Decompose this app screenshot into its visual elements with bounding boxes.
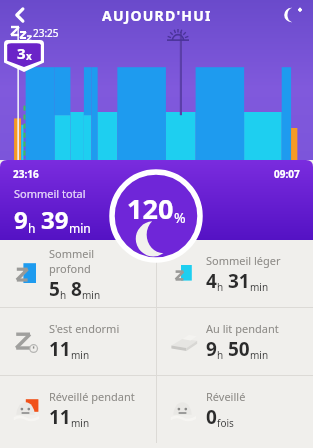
button[interactable]: Réveillé (157, 376, 313, 443)
staticText: fois (217, 416, 234, 430)
button[interactable]: Add sleep (273, 0, 313, 30)
staticText: 0 (206, 404, 217, 430)
staticText: Réveillé (206, 389, 246, 404)
staticText: h (217, 280, 224, 294)
staticText: min (82, 288, 101, 302)
staticText: 120 (127, 190, 174, 227)
staticText: 23:16 (13, 167, 39, 181)
staticText: 9 (14, 203, 28, 236)
staticText: h (28, 220, 36, 236)
button[interactable]: Au lit pendant (157, 308, 313, 375)
staticText: Sommeil léger (206, 253, 281, 268)
button[interactable]: Réveillé pendant (0, 376, 156, 443)
staticText: 8 (71, 276, 82, 302)
staticText: min (69, 220, 91, 236)
staticText: Au lit pendant (206, 321, 279, 336)
staticText: 09:07 (274, 167, 300, 181)
staticText: 31 (228, 268, 250, 294)
staticText: Réveillé pendant (49, 389, 135, 404)
button[interactable]: S'est endormi (0, 308, 156, 375)
staticText: min (71, 416, 90, 430)
staticText: 39 (41, 203, 69, 236)
staticText: 23:25 (33, 26, 59, 40)
staticText: h (60, 288, 67, 302)
staticText: AUJOURD'HUI (102, 6, 212, 25)
staticText: 9 (206, 336, 217, 362)
staticText: Sommeil (49, 246, 95, 261)
staticText: 11 (49, 336, 71, 362)
staticText: 3 (17, 43, 26, 63)
staticText: 50 (228, 336, 250, 362)
staticText: min (71, 348, 90, 362)
staticText: 5 (49, 276, 60, 302)
button[interactable]: Sommeil léger (157, 240, 313, 307)
staticText: % (174, 208, 186, 227)
staticText: S'est endormi (49, 321, 120, 336)
staticText: min (250, 348, 269, 362)
button[interactable]: Back (0, 0, 40, 30)
staticText: min (250, 280, 269, 294)
staticText: 4 (206, 268, 217, 294)
staticText: h (217, 348, 224, 362)
button[interactable]: Sommeil (0, 240, 156, 307)
staticText: 11 (49, 404, 71, 430)
staticText: x (26, 49, 32, 63)
staticText: Sommeil total (14, 186, 86, 201)
staticText: profond (49, 261, 91, 276)
